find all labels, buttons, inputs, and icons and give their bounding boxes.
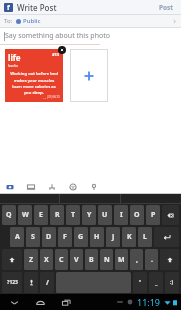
staticText: Q <box>6 210 12 220</box>
button[interactable]: Enter <box>154 227 179 247</box>
staticText: B <box>89 255 94 265</box>
staticText: U <box>102 210 108 220</box>
staticText: ?123 <box>7 279 18 286</box>
staticText: f <box>7 3 10 12</box>
staticText: L <box>143 232 147 242</box>
staticText: Y <box>87 210 92 220</box>
button[interactable]: Tag friends <box>46 181 58 193</box>
staticText: X <box>44 255 49 265</box>
staticText: K <box>127 232 132 242</box>
button[interactable]: Shift <box>2 249 22 270</box>
button[interactable]: O <box>130 205 144 225</box>
button[interactable]: D <box>42 227 56 247</box>
button[interactable]: , <box>130 249 143 270</box>
button[interactable]: Backspace <box>162 205 179 225</box>
other: Voice input <box>28 279 35 286</box>
staticText: hacks <box>8 63 19 68</box>
button[interactable]: ?123 <box>2 272 22 293</box>
other: Backspace <box>167 212 174 219</box>
button[interactable]: C <box>55 249 68 270</box>
button[interactable]: life <box>5 49 63 102</box>
button[interactable]: Y <box>82 205 96 225</box>
button[interactable]: Recents <box>58 294 74 310</box>
staticText: . <box>151 255 153 265</box>
button[interactable]: E <box>34 205 48 225</box>
staticText: LIFEHACKS lifehacks.com <box>8 95 60 99</box>
staticText: 11:19 <box>137 296 161 308</box>
button[interactable]: To: <box>0 15 181 27</box>
button[interactable]: T <box>66 205 80 225</box>
staticText: Z <box>29 255 34 265</box>
button[interactable]: Check in <box>88 181 100 193</box>
staticText: F <box>63 232 67 242</box>
button[interactable]: G <box>74 227 88 247</box>
staticText: I <box>120 210 123 220</box>
button[interactable]: _ <box>149 272 163 293</box>
button[interactable]: Tag photo <box>25 181 37 193</box>
staticText: Public <box>23 17 41 25</box>
button[interactable]: X <box>40 249 53 270</box>
button[interactable]: Z <box>24 249 38 270</box>
staticText: P <box>151 210 156 220</box>
staticText: R <box>55 210 60 220</box>
button[interactable]: R <box>50 205 64 225</box>
staticText: :) <box>170 279 174 286</box>
staticText: / <box>46 278 49 288</box>
other: Shift <box>167 257 173 263</box>
button[interactable]: Photo <box>4 181 16 193</box>
button[interactable]: A <box>10 227 24 247</box>
button[interactable]: H <box>90 227 104 247</box>
staticText: Write Post <box>17 2 57 13</box>
staticText: T <box>71 210 76 220</box>
button[interactable]: Write Post <box>17 0 156 14</box>
staticText: ' <box>139 278 141 288</box>
button[interactable]: J <box>106 227 120 247</box>
staticText: H <box>94 232 100 242</box>
staticText: C <box>59 255 64 265</box>
button[interactable]: Add photo <box>70 49 108 102</box>
staticText: #13 <box>52 52 60 57</box>
button[interactable]: / <box>40 272 54 293</box>
button[interactable]: Facebook <box>4 3 13 12</box>
button[interactable]: L <box>138 227 152 247</box>
button[interactable]: Remove photo <box>58 46 66 54</box>
staticText: V <box>74 255 79 265</box>
staticText: W <box>22 210 29 220</box>
staticText: S <box>31 232 35 242</box>
button[interactable]: :) <box>165 272 179 293</box>
button[interactable]: P <box>146 205 160 225</box>
button[interactable]: B <box>85 249 98 270</box>
button[interactable]: Home <box>32 294 48 310</box>
button[interactable]: V <box>70 249 83 270</box>
staticText: E <box>39 210 43 220</box>
button[interactable]: N <box>100 249 113 270</box>
button[interactable]: Voice input <box>24 272 38 293</box>
button[interactable]: F <box>58 227 72 247</box>
staticText: _ <box>155 279 158 287</box>
other: Enter <box>163 233 171 241</box>
staticText: M <box>118 255 125 265</box>
staticText: O <box>134 210 140 220</box>
button[interactable]: M <box>115 249 128 270</box>
button[interactable]: K <box>122 227 136 247</box>
staticText: Working out before bed makes your muscle… <box>9 71 59 95</box>
button[interactable]: U <box>98 205 112 225</box>
button[interactable]: S <box>26 227 40 247</box>
button[interactable]: Back <box>6 294 22 310</box>
button[interactable]: Say something about this photo <box>0 28 181 44</box>
staticText: G <box>78 232 84 242</box>
staticText: To: <box>4 17 13 25</box>
button[interactable]: Feeling <box>67 181 79 193</box>
button[interactable]: W <box>18 205 32 225</box>
button[interactable]: ' <box>133 272 147 293</box>
button[interactable]: Shift <box>160 249 179 270</box>
button[interactable]: Post <box>159 0 174 14</box>
button[interactable]: Q <box>2 205 16 225</box>
button[interactable]: I <box>114 205 128 225</box>
button[interactable]: . <box>145 249 158 270</box>
staticText: D <box>46 232 52 242</box>
